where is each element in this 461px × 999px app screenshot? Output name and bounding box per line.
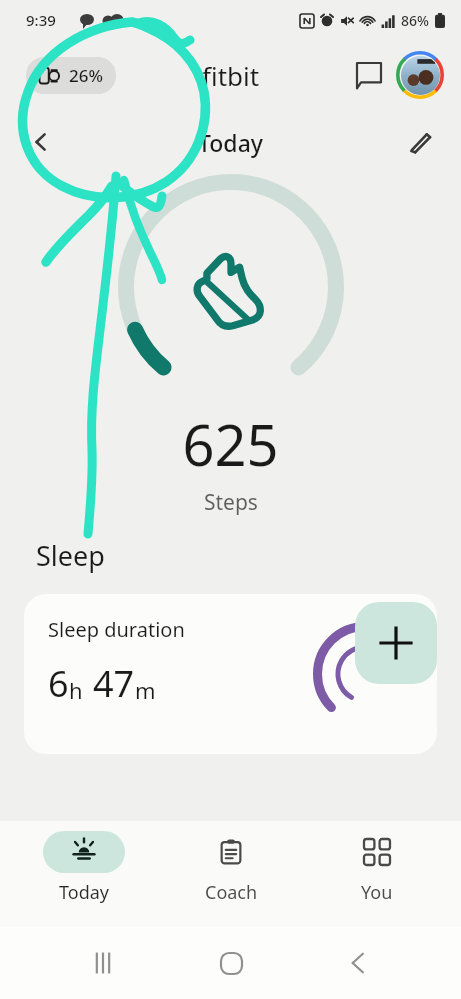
button[interactable]: Back: [334, 939, 382, 987]
staticText: Sleep duration: [48, 616, 185, 643]
staticText: Today: [198, 127, 263, 158]
button[interactable]: Recent apps: [79, 939, 127, 987]
button[interactable]: Steps goal ring: [118, 174, 344, 400]
staticText: You: [361, 880, 393, 905]
button[interactable]: Sleep duration: [24, 594, 437, 754]
staticText: Coach: [205, 880, 258, 905]
button[interactable]: Back: [18, 119, 64, 165]
button[interactable]: You: [314, 821, 440, 905]
button[interactable]: Messages: [347, 53, 391, 97]
button[interactable]: Coach: [168, 821, 294, 905]
button[interactable]: Add: [355, 602, 437, 684]
staticText: 625: [182, 406, 279, 482]
button[interactable]: Edit: [397, 119, 443, 165]
staticText: 6: [48, 659, 69, 708]
staticText: h: [69, 675, 83, 705]
button[interactable]: Profile: [395, 50, 445, 100]
staticText: Steps: [204, 488, 258, 517]
button[interactable]: Today: [21, 821, 147, 905]
staticText: Today: [59, 880, 109, 905]
button[interactable]: 26%: [26, 57, 116, 94]
staticText: Sleep: [36, 537, 105, 574]
staticText: 26%: [69, 64, 103, 87]
staticText: 47: [93, 659, 135, 708]
staticText: 9:39: [26, 10, 56, 30]
button[interactable]: Home: [207, 939, 255, 987]
staticText: 86%: [401, 11, 429, 30]
staticText: m: [135, 675, 156, 705]
staticText: fitbit: [202, 58, 260, 93]
